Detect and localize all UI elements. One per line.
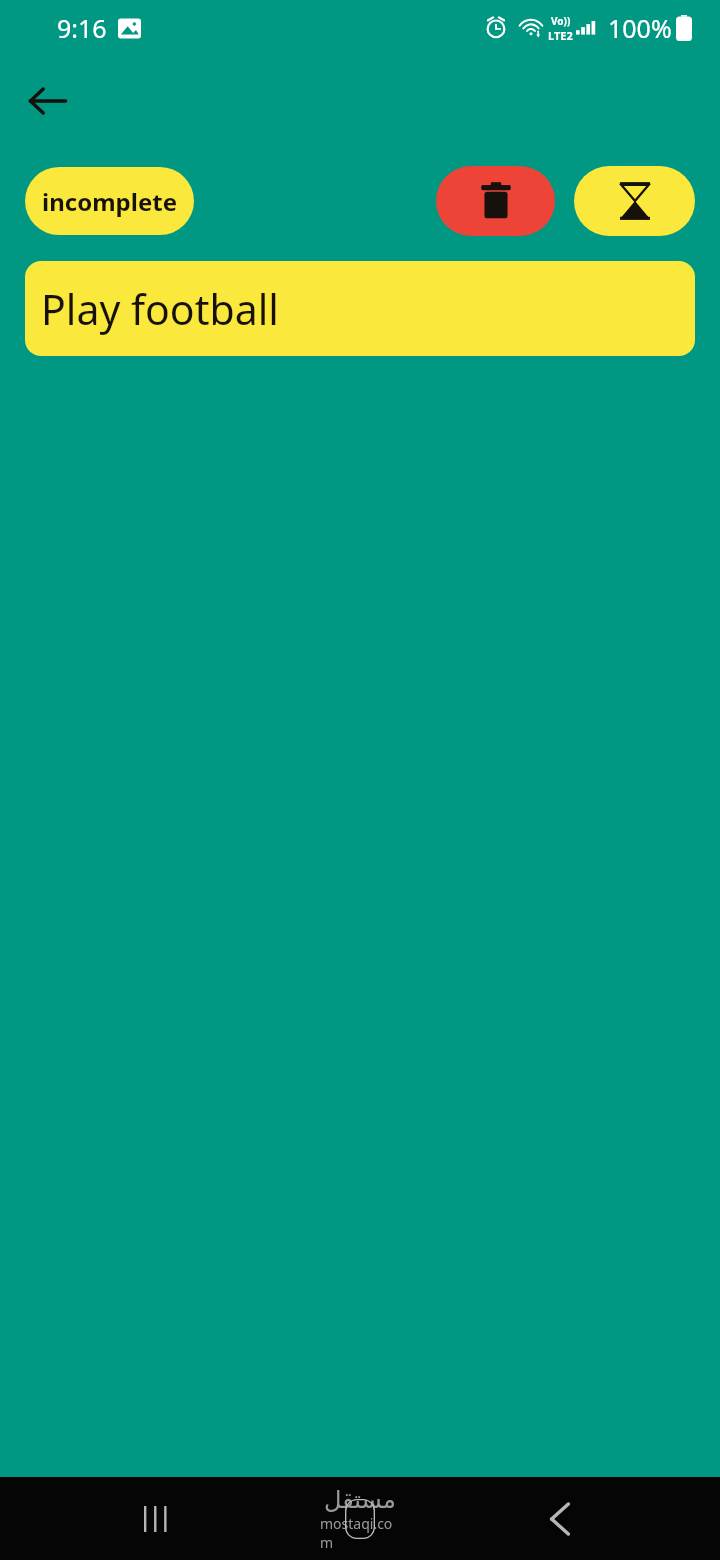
button[interactable]: Play football bbox=[25, 261, 695, 356]
button[interactable]: Back bbox=[520, 1479, 600, 1559]
button[interactable]: Recent apps bbox=[118, 1479, 198, 1559]
staticText: 100% bbox=[608, 11, 672, 45]
staticText: LTE2 bbox=[548, 28, 573, 43]
button[interactable]: incomplete bbox=[25, 167, 194, 235]
button[interactable]: Mark pending bbox=[574, 166, 695, 236]
staticText: مستقل bbox=[324, 1486, 396, 1514]
staticText: mostaqi.com bbox=[320, 1514, 400, 1552]
staticText: Play football bbox=[41, 281, 279, 337]
button[interactable]: Home bbox=[320, 1479, 400, 1559]
staticText: incomplete bbox=[42, 185, 177, 218]
button[interactable]: Back bbox=[16, 69, 80, 133]
staticText: 9:16 bbox=[57, 11, 107, 45]
button[interactable]: Delete bbox=[436, 166, 555, 236]
staticText: Vo)) bbox=[551, 14, 571, 28]
